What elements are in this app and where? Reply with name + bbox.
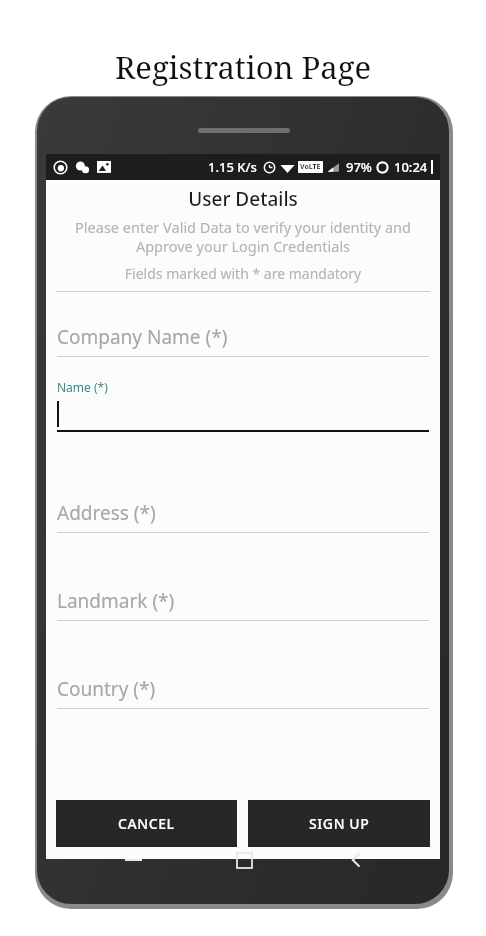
staticText: 10:24: [394, 158, 428, 176]
button[interactable]: Name (*): [57, 379, 429, 432]
button[interactable]: Minimize: [77, 839, 189, 881]
staticText: CANCEL: [118, 814, 175, 833]
staticText: Landmark (*): [57, 588, 175, 614]
staticText: User Details: [46, 186, 440, 212]
staticText: Registration Page: [115, 46, 372, 88]
button[interactable]: Country (*): [57, 676, 429, 709]
staticText: Please enter Valid Data to verify your i…: [52, 217, 434, 256]
button[interactable]: Company Name (*): [57, 324, 429, 357]
button[interactable]: SIGN UP: [248, 800, 430, 847]
staticText: VoLTE: [300, 162, 321, 172]
button[interactable]: CANCEL: [56, 800, 237, 847]
staticText: 1.15 K/s: [208, 158, 257, 176]
button[interactable]: Recent apps: [189, 839, 300, 881]
staticText: Country (*): [57, 676, 156, 702]
staticText: 97%: [346, 158, 372, 176]
button[interactable]: Landmark (*): [57, 588, 429, 621]
staticText: Name (*): [57, 379, 108, 395]
button[interactable]: Back: [300, 839, 411, 881]
staticText: Address (*): [57, 500, 156, 526]
button[interactable]: Address (*): [57, 500, 429, 533]
staticText: Company Name (*): [57, 324, 228, 350]
staticText: Fields marked with * are mandatory: [46, 264, 440, 283]
staticText: SIGN UP: [309, 814, 370, 833]
